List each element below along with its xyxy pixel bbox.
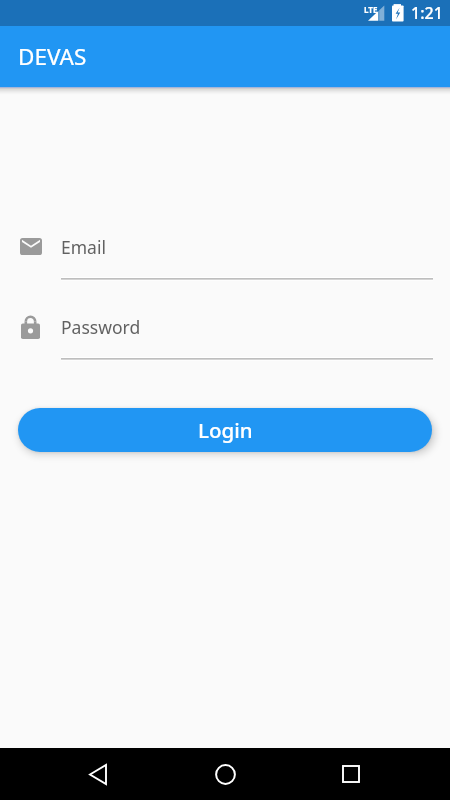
staticText: DEVAS [18, 41, 87, 72]
button[interactable]: Login [18, 408, 432, 452]
button[interactable]: Back [66, 748, 130, 800]
staticText: LTE [364, 4, 378, 15]
button[interactable]: Recents [319, 748, 383, 800]
staticText: Email [61, 235, 106, 259]
staticText: 1:21 [411, 2, 443, 24]
staticText: Login [198, 416, 253, 444]
staticText: Password [61, 315, 141, 339]
button[interactable]: Home [193, 748, 257, 800]
button[interactable]: Password [0, 312, 450, 362]
button[interactable]: Email [0, 232, 450, 282]
